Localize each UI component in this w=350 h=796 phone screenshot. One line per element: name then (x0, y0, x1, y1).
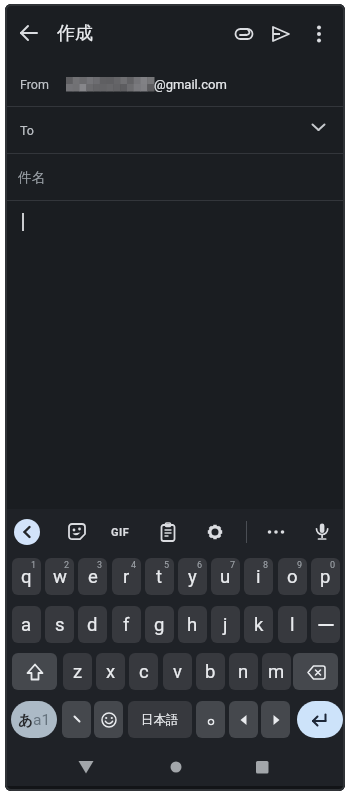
staticText: i (256, 566, 261, 588)
button[interactable] (303, 18, 335, 50)
staticText: 1 (31, 560, 37, 571)
button[interactable]: q (12, 558, 41, 595)
staticText: x (106, 661, 116, 683)
staticText: p (320, 566, 331, 588)
button[interactable] (5, 201, 345, 509)
button[interactable] (12, 653, 57, 690)
button[interactable]: f (112, 606, 141, 643)
button[interactable] (196, 701, 225, 738)
staticText: 4 (131, 560, 137, 571)
button[interactable]: e (78, 558, 107, 595)
staticText: c (139, 661, 149, 683)
button[interactable] (201, 518, 229, 546)
button[interactable]: h (178, 606, 207, 643)
button[interactable] (229, 701, 258, 738)
button[interactable] (5, 154, 345, 200)
button[interactable] (261, 701, 290, 738)
button[interactable] (14, 519, 40, 545)
button[interactable] (311, 606, 340, 643)
staticText: 3 (97, 560, 103, 571)
button[interactable]: a (12, 606, 41, 643)
button[interactable]: l (278, 606, 307, 643)
button[interactable]: o (278, 558, 307, 595)
button[interactable]: r (112, 558, 141, 595)
button[interactable] (265, 18, 297, 50)
button[interactable]: j (211, 606, 240, 643)
staticText: From (20, 77, 49, 92)
staticText: f (123, 614, 130, 636)
button[interactable]: c (129, 653, 158, 690)
button[interactable]: z (63, 653, 92, 690)
staticText: a1 (33, 711, 51, 729)
staticText: k (254, 614, 264, 636)
staticText: 9 (297, 560, 303, 571)
button[interactable]: あ (11, 701, 57, 738)
staticText: 件名 (18, 169, 45, 186)
staticText: v (173, 661, 182, 683)
staticText: r (123, 566, 130, 588)
staticText: l (290, 614, 295, 636)
button[interactable] (63, 518, 91, 546)
staticText: 0 (330, 560, 336, 571)
staticText: e (88, 566, 98, 588)
staticText: b (205, 661, 216, 683)
button[interactable] (62, 701, 91, 738)
staticText: z (73, 661, 83, 683)
staticText: a (21, 614, 32, 636)
button[interactable]: n (229, 653, 258, 690)
button[interactable]: s (45, 606, 74, 643)
staticText: w (53, 566, 67, 588)
staticText: GIF (111, 526, 130, 539)
button[interactable] (5, 62, 345, 106)
button[interactable]: i (244, 558, 273, 595)
button[interactable] (154, 518, 182, 546)
staticText: g (154, 614, 165, 636)
button[interactable]: p (311, 558, 340, 595)
button[interactable] (293, 653, 338, 690)
button[interactable]: v (163, 653, 192, 690)
button[interactable]: b (196, 653, 225, 690)
staticText: m (268, 661, 285, 683)
staticText: 8 (263, 560, 269, 571)
staticText: @gmail.com (154, 77, 227, 92)
button[interactable] (308, 518, 336, 546)
button[interactable] (262, 518, 290, 546)
button[interactable] (13, 17, 45, 49)
button[interactable] (297, 701, 343, 738)
button[interactable] (94, 701, 123, 738)
staticText: n (238, 661, 249, 683)
staticText: To (20, 123, 34, 138)
staticText: j (223, 614, 228, 636)
staticText: 7 (230, 560, 236, 571)
staticText: 作成 (57, 22, 93, 45)
button[interactable] (228, 18, 260, 50)
button[interactable]: m (262, 653, 291, 690)
button[interactable]: d (78, 606, 107, 643)
button[interactable]: k (244, 606, 273, 643)
button[interactable]: g (145, 606, 174, 643)
button[interactable]: t (145, 558, 174, 595)
staticText: 5 (164, 560, 170, 571)
staticText: あ (18, 711, 33, 729)
button[interactable]: x (96, 653, 125, 690)
button[interactable] (5, 107, 345, 153)
staticText: q (21, 566, 32, 588)
staticText: 6 (197, 560, 203, 571)
button[interactable] (161, 752, 191, 782)
staticText: 2 (64, 560, 70, 571)
staticText: 日本語 (141, 712, 179, 728)
button[interactable]: GIF (104, 518, 136, 546)
button[interactable] (247, 752, 277, 782)
staticText: u (220, 566, 231, 588)
staticText: y (188, 566, 197, 588)
staticText: s (55, 614, 65, 636)
button[interactable]: 日本語 (128, 701, 192, 738)
button[interactable]: u (211, 558, 240, 595)
button[interactable] (68, 750, 104, 786)
staticText: d (87, 614, 98, 636)
button[interactable]: y (178, 558, 207, 595)
staticText: o (287, 566, 298, 588)
button[interactable]: w (45, 558, 74, 595)
staticText: h (187, 614, 198, 636)
staticText: t (156, 566, 163, 588)
